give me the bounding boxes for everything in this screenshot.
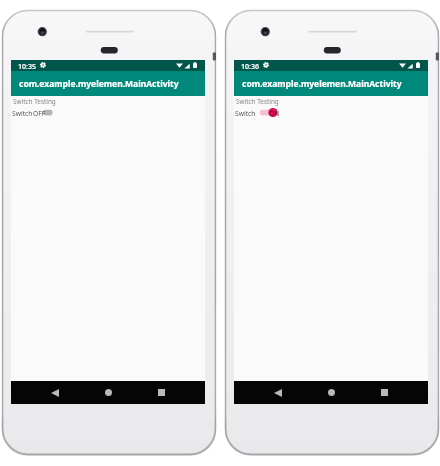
staticText: Switch Testing [13,97,56,106]
button[interactable]: Switch [11,107,205,118]
button[interactable]: Home [94,381,122,404]
staticText: OFF [33,109,46,118]
staticText: com.example.myelemen.MainActivity [242,78,402,90]
button[interactable]: Back [41,381,69,404]
staticText: Switch [12,109,33,118]
button[interactable]: com.example.myelemen.MainActivity [234,71,428,96]
button[interactable]: Recent apps [147,381,175,404]
button[interactable]: com.example.myelemen.MainActivity [11,71,205,96]
button[interactable]: Back [264,381,292,404]
button[interactable]: Switch [234,107,428,118]
button[interactable]: Home [317,381,345,404]
staticText: ON [269,109,280,118]
staticText: 10:35 [18,62,36,72]
staticText: Switch [235,109,256,118]
staticText: com.example.myelemen.MainActivity [19,78,179,90]
staticText: 10:36 [241,62,259,72]
button[interactable]: Recent apps [370,381,398,404]
staticText: Switch Testing [236,97,279,106]
